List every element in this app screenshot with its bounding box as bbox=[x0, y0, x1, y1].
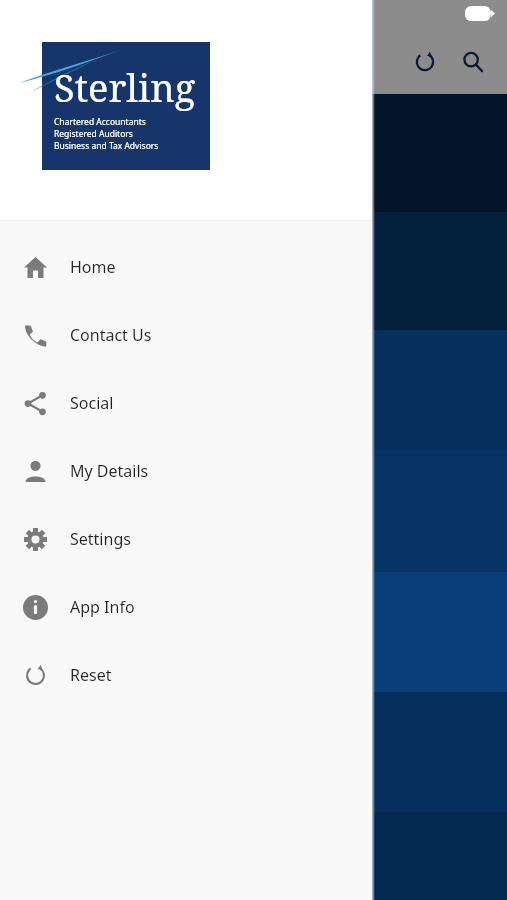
button[interactable]: Social bbox=[0, 369, 372, 437]
button[interactable]: App Info bbox=[0, 573, 372, 641]
button[interactable]: Contact Us bbox=[0, 301, 372, 369]
button[interactable]: My Details bbox=[0, 437, 372, 505]
staticText: Reset bbox=[70, 664, 112, 686]
button[interactable]: Refresh bbox=[401, 38, 449, 86]
button[interactable]: Home bbox=[0, 233, 372, 301]
staticText: Social bbox=[70, 392, 114, 414]
button[interactable]: Settings bbox=[0, 505, 372, 573]
staticText: Chartered Accountants bbox=[54, 116, 146, 128]
staticText: Registered Auditors bbox=[54, 128, 133, 140]
staticText: Business and Tax Advisors bbox=[54, 140, 159, 152]
staticText: App Info bbox=[70, 596, 135, 618]
staticText: My Details bbox=[70, 460, 149, 482]
staticText: Settings bbox=[70, 528, 131, 550]
staticText: Contact Us bbox=[70, 324, 152, 346]
staticText: Sterling bbox=[54, 61, 196, 113]
button[interactable]: Search bbox=[449, 38, 497, 86]
button[interactable]: Reset bbox=[0, 641, 372, 709]
staticText: Home bbox=[70, 256, 116, 278]
